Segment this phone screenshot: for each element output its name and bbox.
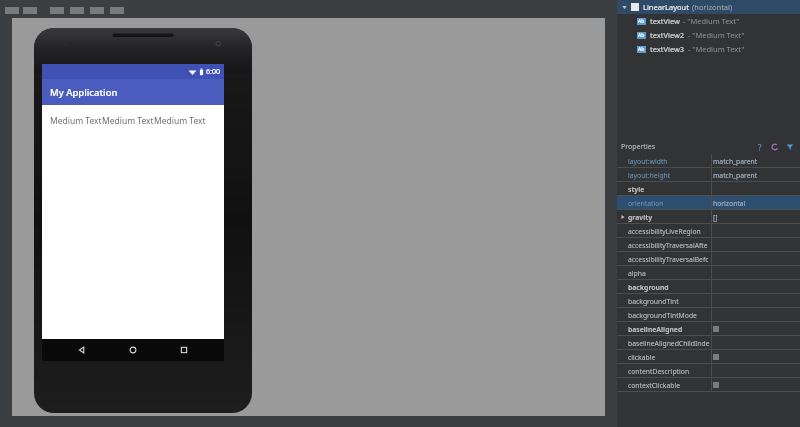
staticText: style [628,185,645,194]
button[interactable]: layout:height [617,168,800,182]
staticText: textView [650,16,680,26]
button[interactable]: Zoom 2 [726,2,742,14]
button[interactable]: accessibilityTraversalAfte [617,238,800,252]
button[interactable]: baselineAlignedChildInde [617,336,800,350]
staticText: - "Medium Text" [683,16,740,26]
button[interactable]: LinearLayout [617,0,800,14]
staticText: match_parent [713,157,758,166]
staticText: gravity [628,213,653,222]
staticText: background [628,283,669,292]
staticText: 6:00 [206,67,220,77]
staticText: clickable [628,353,656,362]
button[interactable]: clickable [617,350,800,364]
staticText: (horizontal) [692,2,733,12]
button[interactable]: gravity [617,210,800,224]
button[interactable]: contentDescription [617,364,800,378]
button[interactable]: Ab [617,42,800,56]
staticText: Ab [638,32,645,39]
button[interactable]: Help [755,142,765,152]
staticText: orientation [628,199,664,208]
staticText: layout:width [628,157,668,166]
button[interactable]: Home [122,339,144,361]
button[interactable]: backgroundTint [617,294,800,308]
button[interactable]: Back [71,339,93,361]
staticText: backgroundTintMode [628,311,697,320]
staticText: Medium Text [154,115,206,127]
staticText: accessibilityTraversalBefc [628,255,709,264]
staticText: layout:height [628,171,671,180]
staticText: Medium Text [50,115,102,127]
staticText: Properties [621,142,655,152]
button[interactable]: orientation [617,196,800,210]
staticText: Ab [638,18,645,25]
staticText: contextClickable [628,381,681,390]
staticText: baselineAligned [628,325,683,334]
button[interactable]: Zoom 0 [688,2,704,14]
button[interactable]: My Application [42,79,224,105]
staticText: - "Medium Text" [688,30,745,40]
button[interactable]: Ab [617,14,800,28]
button[interactable]: style [617,182,800,196]
staticText: ? [758,142,762,152]
staticText: Medium Text [102,115,154,127]
staticText: textView2 [650,30,685,40]
button[interactable]: Filter [785,142,795,152]
staticText: horizontal [713,199,746,208]
staticText: baselineAlignedChildInde [628,339,710,348]
button[interactable]: Zoom tool [668,2,685,14]
staticText: [] [713,213,718,222]
staticText: textView3 [650,44,685,54]
staticText: backgroundTint [628,297,679,306]
staticText: contentDescription [628,367,690,376]
button[interactable]: alpha [617,266,800,280]
staticText: alpha [628,269,646,278]
button[interactable]: Reset [770,142,780,152]
staticText: My Application [50,86,118,99]
staticText: match_parent [713,171,758,180]
staticText: accessibilityLiveRegion [628,227,701,236]
staticText: LinearLayout [643,2,689,12]
button[interactable]: Ab [617,28,800,42]
button[interactable]: baselineAligned [617,322,800,336]
button[interactable]: Zoom 1 [707,2,723,14]
staticText: accessibilityTraversalAfte [628,241,708,250]
button[interactable]: Recents [173,339,195,361]
button[interactable]: background [617,280,800,294]
button[interactable]: accessibilityTraversalBefc [617,252,800,266]
staticText: - "Medium Text" [688,44,745,54]
button[interactable]: layout:width [617,154,800,168]
staticText: Ab [638,46,645,53]
button[interactable]: contextClickable [617,378,800,392]
button[interactable]: accessibilityLiveRegion [617,224,800,238]
button[interactable]: backgroundTintMode [617,308,800,322]
